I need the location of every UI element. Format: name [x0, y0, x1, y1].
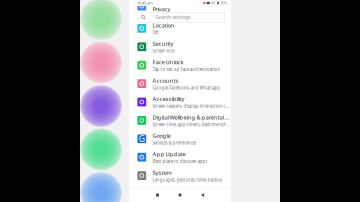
staticText: Face Unlock: [152, 58, 183, 66]
staticText: Google: [152, 132, 170, 139]
staticText: Location: [152, 21, 174, 29]
staticText: Accessibility: [152, 95, 184, 103]
staticText: Screen time, app timers, bedtime schedul…: [152, 121, 229, 127]
staticText: Google, Facebook, and Whatsapp: [152, 85, 220, 91]
button[interactable]: Location: [129, 19, 231, 38]
button[interactable]: Home: [175, 189, 185, 200]
staticText: Languages, gestures, time, backup: [152, 177, 222, 183]
staticText: Security: [152, 40, 173, 47]
staticText: Tap to set up face authentication: [152, 66, 220, 72]
staticText: Digital Wellbeing & parental controls: [152, 113, 229, 121]
button[interactable]: System: [129, 166, 231, 185]
button[interactable]: Security: [129, 38, 231, 56]
staticText: App Update: [152, 150, 185, 158]
staticText: Off: [152, 29, 158, 35]
button[interactable]: Back: [197, 189, 207, 200]
button[interactable]: Accounts: [129, 74, 231, 93]
staticText: Search settings: [155, 14, 190, 20]
button[interactable]: Face Unlock: [129, 56, 231, 74]
staticText: G: [139, 133, 145, 145]
staticText: Screen lock: [152, 48, 174, 54]
button[interactable]: Recent apps: [152, 189, 162, 200]
button[interactable]: Accessibility: [129, 93, 231, 111]
staticText: Best place to discover apps: [152, 158, 207, 164]
staticText: Accounts: [152, 76, 178, 84]
staticText: 4G: [211, 1, 216, 5]
staticText: Services & preferences: [152, 140, 196, 146]
staticText: System: [152, 168, 171, 176]
staticText: 35%: [220, 1, 227, 5]
staticText: 10:45 am: [137, 0, 153, 6]
staticText: Privacy: [152, 5, 170, 13]
button[interactable]: G: [129, 130, 231, 148]
button[interactable]: App Update: [129, 148, 231, 166]
button[interactable]: Digital Wellbeing & parental controls: [129, 111, 231, 130]
staticText: Screen readers, display, interaction con…: [152, 103, 229, 109]
